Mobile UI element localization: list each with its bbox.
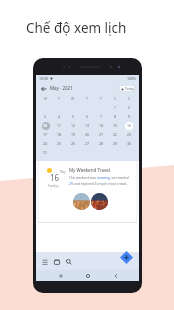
staticText: May <box>60 170 66 174</box>
staticText: 17 <box>43 132 48 137</box>
staticText: 2 <box>128 105 131 110</box>
staticText: 14 <box>99 123 104 128</box>
button[interactable]: Back <box>112 272 119 279</box>
staticText: 20 <box>85 132 90 137</box>
staticText: 23 <box>127 132 132 137</box>
button[interactable]: Today <box>119 85 135 92</box>
staticText: T <box>86 96 88 101</box>
staticText: 22 <box>113 132 118 137</box>
staticText: 4 <box>58 114 61 119</box>
staticText: F <box>100 96 102 101</box>
staticText: 15 <box>113 123 118 128</box>
staticText: S <box>114 96 116 101</box>
staticText: 13 <box>85 123 90 128</box>
staticText: T <box>58 96 60 101</box>
staticText: 29 <box>113 141 118 146</box>
staticText: 27 <box>85 141 90 146</box>
staticText: 10 <box>43 123 48 128</box>
staticText: 28 <box>99 141 104 146</box>
staticText: May · 2021 <box>50 85 73 91</box>
button[interactable]: Home <box>84 272 91 279</box>
staticText: 10:00 <box>39 76 48 81</box>
staticText: 9 <box>128 114 131 119</box>
staticText: 19 <box>71 132 76 137</box>
staticText: 100% <box>127 76 136 81</box>
staticText: 3 <box>44 114 47 119</box>
staticText: 25 <box>57 141 62 146</box>
staticText: Today <box>125 87 134 91</box>
staticText: 21 <box>99 132 104 137</box>
button[interactable]: Back <box>40 85 47 92</box>
staticText: S <box>128 96 130 101</box>
button[interactable]: Menu <box>40 257 49 266</box>
staticText: M <box>44 96 48 101</box>
button[interactable]: May <box>36 161 139 223</box>
staticText: 24 <box>43 141 48 146</box>
staticText: 31 <box>43 150 48 155</box>
staticText: 8 <box>114 114 117 119</box>
button[interactable]: Calendar <box>52 257 61 266</box>
staticText: Sunday <box>48 184 59 188</box>
staticText: 16 <box>50 172 60 183</box>
button[interactable]: Recents <box>57 272 64 279</box>
button[interactable]: Search <box>64 257 73 266</box>
staticText: 16 <box>127 123 132 128</box>
staticText: 5 <box>72 114 75 119</box>
staticText: 7 <box>100 114 103 119</box>
staticText: 11 <box>57 123 62 128</box>
staticText: 26 <box>71 141 76 146</box>
staticText: 30 <box>127 141 132 146</box>
staticText: 2% and explored Europe's most crowd... <box>69 182 129 186</box>
staticText: 12 <box>71 123 76 128</box>
staticText: Chế độ xem lịch <box>26 19 127 37</box>
staticText: 1 <box>114 105 117 110</box>
staticText: 6 <box>86 114 89 119</box>
staticText: W <box>71 96 75 101</box>
button[interactable]: Add event <box>120 251 133 264</box>
staticText: This weekend was amazing, we traveled <box>69 176 129 180</box>
staticText: 18 <box>57 132 62 137</box>
staticText: My Weekend Travel. <box>69 167 112 173</box>
